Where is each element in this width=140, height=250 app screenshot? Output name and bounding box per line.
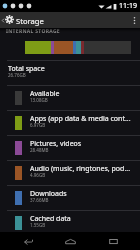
staticText: Audio (music, ringtones, pod... xyxy=(30,164,131,174)
staticText: 13.08GB xyxy=(30,97,48,103)
button[interactable]: Apps (app data & media cont... xyxy=(0,110,140,135)
button[interactable]: Cached data xyxy=(0,210,140,235)
staticText: INTERNAL STORAGE xyxy=(6,28,60,35)
staticText: Storage xyxy=(16,16,44,26)
staticText: 28.48MB xyxy=(30,147,49,153)
staticText: 1.55GB xyxy=(30,222,46,228)
staticText: Cached data xyxy=(30,214,71,224)
button[interactable]: Audio (music, ringtones, pod... xyxy=(0,160,140,185)
staticText: Pictures, videos xyxy=(30,139,82,149)
button[interactable]: Total space xyxy=(0,60,140,85)
button[interactable]: Navigate up xyxy=(0,12,5,28)
button[interactable]: Recent apps xyxy=(98,232,128,250)
button[interactable]: More options xyxy=(128,12,140,28)
button[interactable]: Downloads xyxy=(0,185,140,210)
staticText: Apps (app data & media cont... xyxy=(30,114,131,124)
staticText: Available xyxy=(30,89,60,99)
staticText: Total space xyxy=(8,64,45,74)
staticText: 4.96GB xyxy=(30,172,46,178)
button[interactable]: Home xyxy=(55,232,85,250)
staticText: 6.97GB xyxy=(30,122,46,128)
button[interactable]: Pictures, videos xyxy=(0,135,140,160)
button[interactable]: Back xyxy=(13,232,43,250)
staticText: Downloads xyxy=(30,189,67,199)
button[interactable]: Available xyxy=(0,85,140,110)
staticText: 26.76GB xyxy=(8,72,26,78)
staticText: 11:19 xyxy=(119,1,137,11)
staticText: 37.66MB xyxy=(30,197,49,203)
